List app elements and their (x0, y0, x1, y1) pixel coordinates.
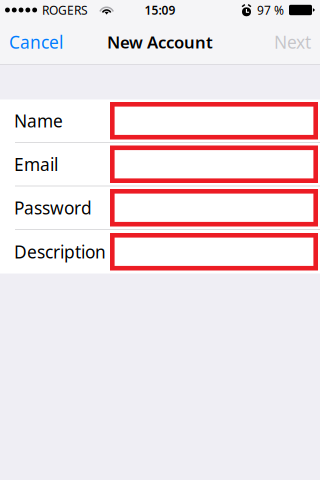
staticText: Cancel (9, 30, 63, 54)
staticText: 97 % (257, 2, 284, 18)
staticText: ROGERS (42, 2, 88, 18)
button[interactable]: Password (0, 186, 320, 229)
staticText: Description (14, 240, 106, 263)
button[interactable]: Description (0, 230, 320, 273)
staticText: Next (274, 30, 311, 54)
button[interactable]: Cancel (0, 20, 75, 64)
button[interactable]: Name (0, 99, 320, 142)
staticText: Password (14, 196, 92, 219)
button[interactable]: Email (0, 143, 320, 185)
staticText: Name (14, 109, 63, 132)
staticText: 15:09 (144, 2, 175, 18)
staticText: New Account (107, 31, 213, 53)
button[interactable]: Next (262, 20, 320, 64)
staticText: Email (14, 152, 58, 176)
